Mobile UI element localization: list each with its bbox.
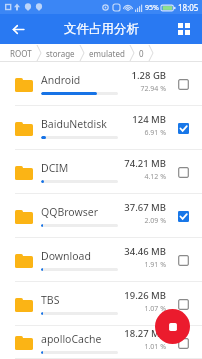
staticText: 37.67 MB [124,201,166,214]
staticText: 0 [139,48,144,59]
staticText: apolloCache [41,332,102,346]
staticText: Android [41,73,81,87]
button[interactable]: QQBrowser [0,194,202,238]
button[interactable]: Selected [172,117,194,139]
staticText: storage [46,48,75,59]
staticText: 19.26 MB [124,289,166,302]
button[interactable]: ROOT [7,46,35,61]
staticText: 1.07 % [144,304,166,314]
staticText: 1.91 % [144,260,166,270]
staticText: QQBrowser [41,205,99,219]
button[interactable]: DCIM [0,150,202,194]
staticText: Download [41,249,91,263]
staticText: 74.21 MB [124,157,166,170]
button[interactable]: Not selected [172,73,194,95]
staticText: ROOT [10,48,32,59]
button[interactable]: Selected [172,205,194,227]
button[interactable]: Not selected [172,293,194,315]
button[interactable]: Not selected [172,249,194,271]
staticText: 72.94 % [140,84,166,94]
button[interactable]: Back [5,16,31,42]
button[interactable]: emulated [86,46,128,61]
staticText: 2.09 % [144,216,166,226]
staticText: BaiduNetdisk [41,117,107,131]
staticText: emulated [89,48,125,59]
button[interactable]: Not selected [172,332,194,354]
staticText: 1.28 GB [131,69,166,82]
staticText: TBS [41,293,60,307]
button[interactable]: Not selected [172,161,194,183]
staticText: 文件占用分析 [64,21,139,37]
button[interactable]: storage [43,46,78,61]
staticText: 4.12 % [144,172,166,182]
staticText: 18:05 [178,2,199,13]
staticText: 6.91 % [144,128,166,138]
button[interactable]: Grid view [172,17,196,41]
button[interactable]: Android [0,62,202,106]
button[interactable]: 0 [136,46,147,61]
staticText: 1.01 % [144,342,166,352]
button[interactable]: TBS [0,282,202,326]
staticText: DCIM [41,161,69,175]
button[interactable]: Delete [155,309,190,344]
button[interactable]: Download [0,238,202,282]
staticText: 124 MB [132,113,166,126]
staticText: 18.27 MB [124,327,166,340]
staticText: 34.46 MB [124,245,166,258]
staticText: 95% [145,3,159,13]
button[interactable]: apolloCache [0,326,202,359]
button[interactable]: BaiduNetdisk [0,106,202,150]
